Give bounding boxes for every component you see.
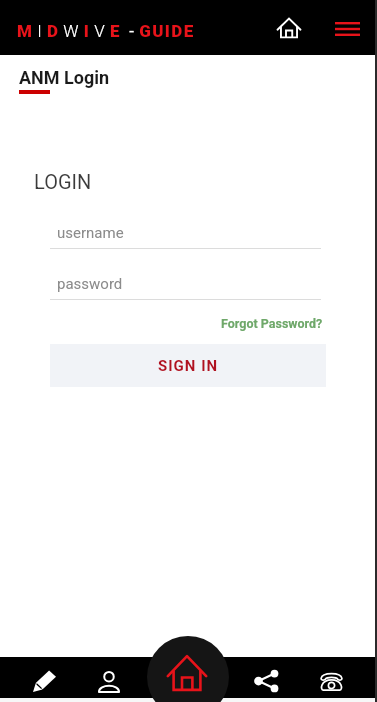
button[interactable]: Profile	[85, 657, 133, 698]
staticText: MIDWIVE - GUIDE	[17, 21, 195, 41]
button[interactable]: Home	[147, 636, 229, 702]
staticText: LOGIN	[34, 170, 92, 193]
button[interactable]: Share	[242, 657, 290, 698]
button[interactable]: SIGN IN	[50, 344, 326, 387]
staticText: SIGN IN	[158, 357, 219, 375]
button[interactable]: Call	[307, 657, 355, 698]
button[interactable]: Home	[267, 5, 312, 50]
button[interactable]: Edit	[20, 657, 68, 698]
staticText: username	[57, 224, 124, 242]
staticText: password	[57, 275, 123, 293]
staticText: ANM Login	[19, 67, 110, 88]
button[interactable]: Menu	[325, 6, 370, 51]
staticText: Forgot Password?	[221, 316, 323, 331]
button[interactable]: Forgot Password?	[221, 316, 323, 331]
